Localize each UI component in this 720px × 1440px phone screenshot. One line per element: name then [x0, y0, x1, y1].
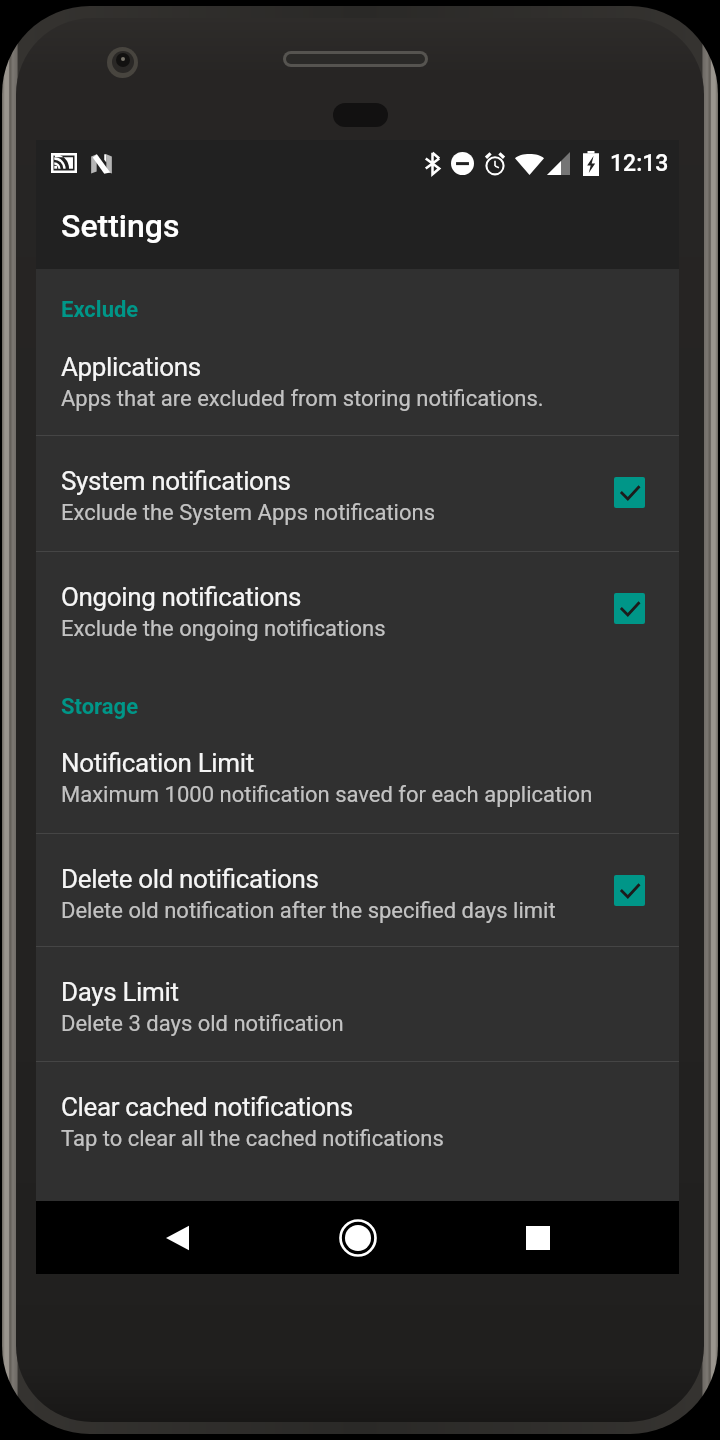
button[interactable]: Back: [105, 1201, 249, 1274]
button[interactable]: Days Limit: [36, 947, 679, 1062]
button[interactable]: Clear cached notifications: [36, 1062, 679, 1178]
staticText: Ongoing notifications: [61, 582, 302, 612]
staticText: Delete old notification after the specif…: [61, 898, 556, 924]
staticText: Apps that are excluded from storing noti…: [61, 386, 544, 412]
staticText: Notification Limit: [61, 748, 254, 778]
staticText: Applications: [61, 352, 201, 382]
button[interactable]: Home: [285, 1201, 430, 1274]
staticText: Delete 3 days old notification: [61, 1011, 344, 1037]
staticText: Days Limit: [61, 977, 179, 1007]
staticText: Exclude the ongoing notifications: [61, 616, 386, 642]
staticText: Tap to clear all the cached notification…: [61, 1126, 444, 1152]
staticText: 12:13: [610, 150, 669, 177]
button[interactable]: Ongoing notifications: [36, 552, 679, 666]
staticText: Settings: [61, 207, 180, 245]
staticText: Storage: [61, 694, 139, 720]
button[interactable]: Notification Limit: [36, 718, 679, 834]
staticText: Delete old notifications: [61, 864, 319, 894]
staticText: Clear cached notifications: [61, 1092, 353, 1122]
button[interactable]: Recent apps: [466, 1201, 610, 1274]
staticText: Exclude the System Apps notifications: [61, 500, 435, 526]
button[interactable]: System notifications: [36, 436, 679, 552]
button[interactable]: Delete old notifications: [36, 834, 679, 947]
staticText: System notifications: [61, 466, 291, 496]
staticText: Exclude: [61, 297, 139, 323]
staticText: Maximum 1000 notification saved for each…: [61, 782, 593, 808]
button[interactable]: Applications: [36, 322, 679, 436]
